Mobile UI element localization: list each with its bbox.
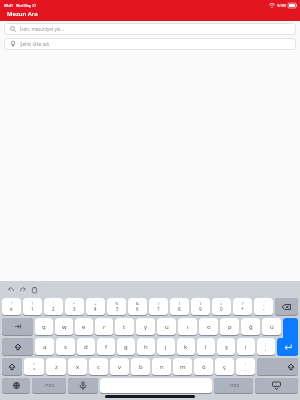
button[interactable]: l (197, 338, 215, 356)
staticText: < (33, 366, 36, 372)
button[interactable]: .?123 (214, 378, 253, 394)
staticText: Şehir, ülke adı (20, 41, 49, 47)
button[interactable] (2, 378, 30, 394)
button[interactable]: r (95, 318, 113, 336)
button[interactable]: ğ (241, 318, 260, 336)
button[interactable]: k (177, 338, 195, 356)
staticText: d (84, 343, 88, 351)
button[interactable]: n (152, 358, 171, 376)
staticText: 2 (52, 306, 55, 312)
button[interactable] (2, 338, 33, 356)
staticText: 5 (116, 306, 119, 312)
staticText: 1 (31, 306, 34, 312)
button[interactable]: c (89, 358, 108, 376)
staticText: , (265, 346, 267, 352)
button[interactable] (277, 338, 298, 356)
button[interactable]: .?123 (32, 378, 66, 394)
button[interactable]: x (68, 358, 87, 376)
button[interactable]: ' (44, 298, 63, 316)
staticText: 0 (220, 306, 223, 312)
button[interactable]: ı (178, 318, 197, 336)
button[interactable] (283, 318, 298, 356)
button[interactable]: a (35, 338, 54, 356)
button[interactable]: ç (215, 358, 234, 376)
button[interactable]: İsim, mezuniyet yılı... (4, 23, 296, 35)
button[interactable]: s (56, 338, 75, 356)
staticText: m (180, 363, 186, 371)
staticText: w (62, 323, 67, 331)
button[interactable]: ş (217, 338, 235, 356)
button[interactable]: o (199, 318, 218, 336)
staticText: - (263, 306, 265, 312)
button[interactable]: & (128, 298, 147, 316)
button[interactable]: t (115, 318, 134, 336)
staticText: b (139, 363, 143, 371)
button[interactable]: w (55, 318, 73, 336)
staticText: u (165, 323, 169, 331)
button[interactable] (8, 287, 14, 292)
button[interactable] (20, 287, 26, 292)
button[interactable]: y (136, 318, 155, 336)
button[interactable] (257, 358, 298, 376)
button[interactable]: ( (170, 298, 189, 316)
button[interactable]: j (157, 338, 175, 356)
button[interactable]: = (212, 298, 231, 316)
staticText: & (136, 301, 139, 306)
staticText: : (245, 361, 247, 366)
button[interactable]: g (117, 338, 135, 356)
staticText: ' (53, 301, 54, 306)
button[interactable]: ö (194, 358, 213, 376)
staticText: ü (270, 323, 274, 331)
staticText: o (207, 323, 211, 331)
button[interactable]: b (131, 358, 150, 376)
button[interactable] (100, 378, 212, 394)
button[interactable]: v (110, 358, 129, 376)
button[interactable]: z (46, 358, 66, 376)
button[interactable]: " (2, 298, 21, 316)
button[interactable] (2, 318, 33, 336)
staticText: q (42, 323, 46, 331)
staticText: z (55, 363, 58, 371)
staticText: ) (200, 301, 202, 306)
button[interactable]: u (157, 318, 176, 336)
button[interactable]: h (137, 338, 155, 356)
button[interactable]: f (97, 338, 115, 356)
button[interactable]: e (75, 318, 93, 336)
button[interactable]: ^ (65, 298, 84, 316)
staticText: + (94, 301, 97, 306)
button[interactable]: ? (233, 298, 252, 316)
button[interactable]: ! (23, 298, 42, 316)
button[interactable]: : (236, 358, 255, 376)
button[interactable]: m (173, 358, 192, 376)
button[interactable]: ; (257, 338, 275, 356)
button[interactable]: ü (262, 318, 281, 336)
staticText: x (76, 363, 80, 371)
staticText: 3 (73, 306, 76, 312)
staticText: h (144, 343, 148, 351)
button[interactable]: + (86, 298, 105, 316)
staticText: a (43, 343, 47, 351)
staticText: Wed May 21 (16, 3, 37, 8)
button[interactable] (255, 378, 298, 394)
button[interactable]: % (107, 298, 126, 316)
staticText: n (160, 363, 164, 371)
button[interactable]: d (77, 338, 95, 356)
button[interactable]: i (237, 338, 255, 356)
staticText: > (33, 361, 36, 366)
button[interactable]: q (35, 318, 53, 336)
button[interactable]: _ (254, 298, 273, 316)
button[interactable]: p (220, 318, 239, 336)
button[interactable]: / (149, 298, 168, 316)
button[interactable]: ) (191, 298, 210, 316)
button[interactable]: > (24, 358, 44, 376)
staticText: " (11, 301, 13, 306)
button[interactable] (68, 378, 98, 394)
button[interactable] (275, 298, 298, 316)
button[interactable] (32, 287, 37, 293)
staticText: 4 (94, 306, 97, 312)
button[interactable] (2, 358, 22, 376)
staticText: 6 (136, 306, 139, 312)
staticText: ğ (249, 323, 253, 331)
button[interactable]: Şehir, ülke adı (4, 38, 296, 50)
staticText: 8 (178, 306, 181, 312)
